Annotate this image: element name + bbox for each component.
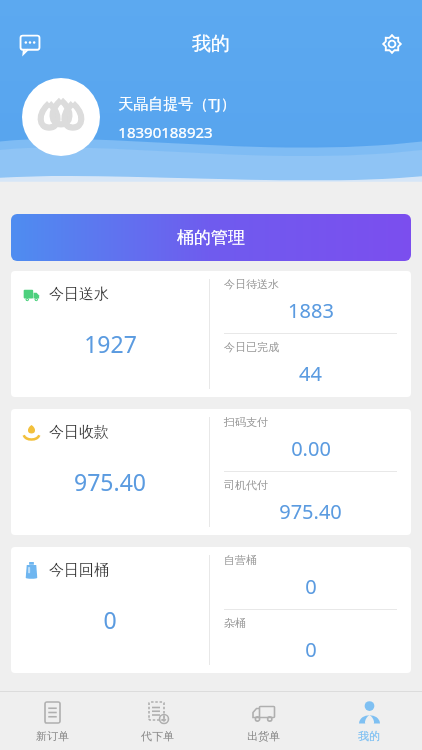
staticText: 975.40 (279, 498, 342, 525)
staticText: 扫码支付 (224, 415, 268, 429)
button[interactable]: 桶的管理 (11, 214, 411, 261)
button[interactable]: 天晶自提号（TJ） (22, 78, 406, 156)
staticText: 975.40 (74, 466, 146, 497)
staticText: 0 (305, 636, 317, 663)
staticText: 1883 (288, 297, 334, 324)
staticText: 18390188923 (118, 122, 213, 142)
button[interactable]: 今日送水 (11, 271, 411, 397)
staticText: 出货单 (247, 729, 280, 743)
staticText: 我的 (192, 32, 230, 56)
staticText: 新订单 (36, 729, 69, 743)
staticText: 天晶自提号（TJ） (118, 93, 236, 113)
staticText: 今日回桶 (49, 561, 109, 580)
staticText: 自营桶 (224, 553, 257, 567)
button[interactable]: 今日收款 (11, 409, 411, 535)
button[interactable]: 新订单 (0, 692, 105, 750)
button[interactable]: Messages (8, 22, 52, 66)
button[interactable]: 代下单 (105, 692, 210, 750)
staticText: 0 (103, 604, 117, 635)
staticText: 今日待送水 (224, 277, 279, 291)
staticText: 我的 (358, 729, 380, 743)
staticText: 今日已完成 (224, 340, 279, 354)
staticText: 44 (299, 360, 322, 387)
staticText: 今日收款 (49, 423, 109, 442)
staticText: 0.00 (291, 435, 331, 462)
staticText: 杂桶 (224, 616, 246, 630)
staticText: 司机代付 (224, 478, 268, 492)
staticText: 1927 (84, 328, 137, 359)
button[interactable]: 我的 (316, 692, 422, 750)
button[interactable]: 今日回桶 (11, 547, 411, 673)
staticText: 桶的管理 (177, 227, 245, 248)
button[interactable]: Settings (370, 22, 414, 66)
staticText: 0 (305, 573, 317, 600)
staticText: 今日送水 (49, 285, 109, 304)
button[interactable]: 出货单 (210, 692, 316, 750)
staticText: 代下单 (141, 729, 174, 743)
